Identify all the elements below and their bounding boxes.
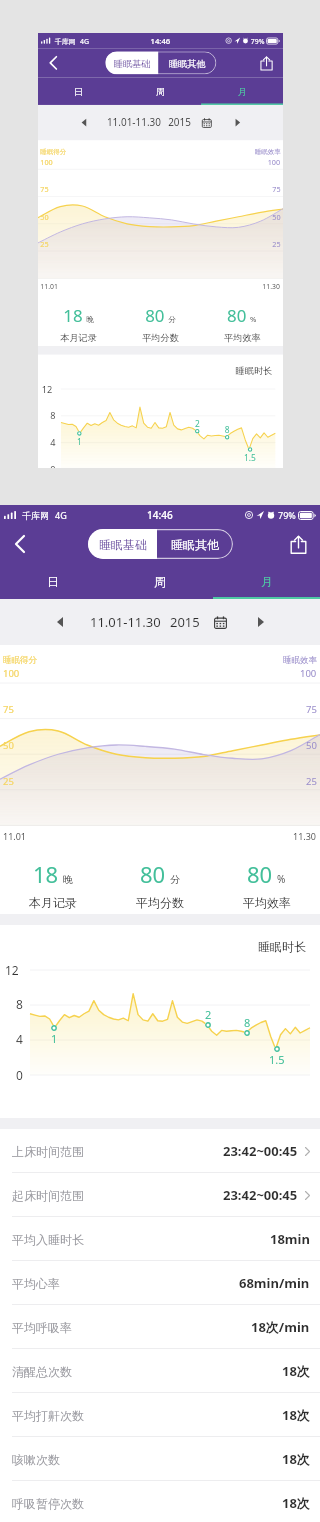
staticText: 睡眠其他 (171, 537, 219, 552)
button[interactable]: 平均心率 (0, 1261, 320, 1305)
staticText: 1 (77, 436, 82, 446)
button[interactable]: 睡眠其他 (158, 51, 216, 74)
staticText: 分 (168, 315, 176, 325)
button[interactable]: 清醒总次数 (0, 1349, 320, 1393)
button[interactable]: Back (39, 49, 67, 77)
button[interactable]: 周 (119, 77, 201, 105)
staticText: 本月记录 (29, 895, 77, 910)
staticText: 11.01-11.30 (107, 116, 161, 129)
staticText: 80 (247, 859, 273, 889)
staticText: 本月记录 (60, 332, 97, 343)
staticText: 上床时间范围 (12, 1144, 84, 1159)
staticText: 100 (40, 157, 53, 167)
button[interactable]: Next period (247, 608, 275, 636)
button[interactable]: Back (2, 526, 38, 562)
staticText: 起床时间范围 (12, 1188, 84, 1203)
staticText: 50 (40, 212, 49, 222)
staticText: 周 (154, 574, 166, 589)
staticText: 平均入睡时长 (12, 1232, 84, 1247)
staticText: 11.01 (3, 830, 27, 842)
staticText: 睡眠基础 (114, 57, 151, 69)
button[interactable]: 日 (0, 563, 106, 599)
staticText: 睡眠效率 (283, 655, 317, 666)
button[interactable]: Share (252, 49, 280, 77)
staticText: 12 (42, 383, 52, 395)
button[interactable]: 平均呼吸率 (0, 1305, 320, 1349)
staticText: 100 (3, 667, 20, 680)
button[interactable]: Next period (227, 112, 248, 133)
staticText: 80 (145, 304, 165, 327)
staticText: 25 (272, 240, 281, 250)
staticText: 18次 (282, 1406, 310, 1424)
staticText: 75 (3, 703, 14, 716)
staticText: 18 (33, 859, 59, 889)
staticText: 18 (63, 304, 83, 327)
staticText: 23:42~00:45 (223, 1142, 298, 1160)
button[interactable]: Pick date (198, 114, 215, 131)
button[interactable]: Previous period (73, 112, 95, 133)
staticText: 14:46 (147, 508, 173, 522)
staticText: 咳嗽次数 (12, 1452, 60, 1467)
button[interactable]: 睡眠基础 (105, 51, 158, 74)
staticText: 50 (306, 739, 317, 752)
button[interactable]: 平均打鼾次数 (0, 1393, 320, 1437)
button[interactable]: Previous period (46, 608, 74, 636)
staticText: 50 (3, 739, 14, 752)
staticText: 75 (40, 185, 49, 195)
button[interactable]: 起床时间范围 (0, 1173, 320, 1217)
staticText: 日 (74, 86, 83, 97)
staticText: 0 (50, 463, 56, 468)
staticText: 晚 (86, 315, 94, 325)
staticText: 18次/min (251, 1318, 310, 1336)
button[interactable]: 月 (201, 77, 283, 105)
button[interactable]: 周 (106, 563, 213, 599)
staticText: 75 (306, 703, 317, 716)
staticText: 平均效率 (224, 332, 261, 343)
staticText: % (250, 314, 257, 325)
staticText: 1.5 (244, 452, 256, 462)
staticText: 11.30 (262, 282, 281, 291)
staticText: 呼吸暂停次数 (12, 1496, 84, 1511)
staticText: 平均效率 (243, 895, 291, 910)
button[interactable]: 日 (38, 77, 119, 105)
staticText: 分 (170, 873, 180, 886)
staticText: 8 (225, 423, 230, 434)
staticText: 18min (270, 1230, 310, 1248)
button[interactable]: Pick date (209, 611, 231, 633)
staticText: 25 (40, 240, 49, 250)
staticText: 4G (80, 36, 89, 45)
staticText: 千库网 (55, 37, 75, 45)
staticText: 日 (47, 574, 59, 589)
staticText: 11.01-11.30 (90, 613, 161, 631)
staticText: 100 (268, 157, 281, 167)
staticText: 25 (306, 775, 317, 788)
staticText: 睡眠得分 (40, 148, 66, 156)
button[interactable]: 上床时间范围 (0, 1129, 320, 1173)
button[interactable]: 月 (213, 563, 320, 599)
staticText: 1.5 (269, 1052, 285, 1066)
staticText: 清醒总次数 (12, 1364, 72, 1379)
button[interactable]: 咳嗽次数 (0, 1437, 320, 1481)
staticText: 平均分数 (142, 332, 179, 343)
staticText: 18次 (282, 1494, 310, 1512)
staticText: 平均呼吸率 (12, 1320, 72, 1335)
staticText: 23:42~00:45 (223, 1186, 298, 1204)
button[interactable]: 睡眠基础 (88, 529, 157, 559)
staticText: 睡眠其他 (169, 57, 206, 69)
staticText: 月 (261, 574, 273, 589)
staticText: 11.30 (293, 830, 317, 842)
staticText: 1 (51, 1031, 58, 1045)
staticText: 68min/min (239, 1274, 310, 1292)
button[interactable]: 平均入睡时长 (0, 1217, 320, 1261)
button[interactable]: 呼吸暂停次数 (0, 1481, 320, 1522)
staticText: 平均打鼾次数 (12, 1408, 84, 1423)
staticText: 12 (5, 962, 19, 978)
staticText: 75 (272, 185, 281, 195)
staticText: 18次 (282, 1362, 310, 1380)
staticText: 18次 (282, 1450, 310, 1468)
staticText: 11.01 (40, 282, 59, 291)
button[interactable]: 睡眠其他 (157, 529, 233, 559)
button[interactable]: Share (280, 526, 316, 562)
staticText: 睡眠效率 (255, 148, 281, 156)
staticText: 4 (50, 436, 56, 448)
